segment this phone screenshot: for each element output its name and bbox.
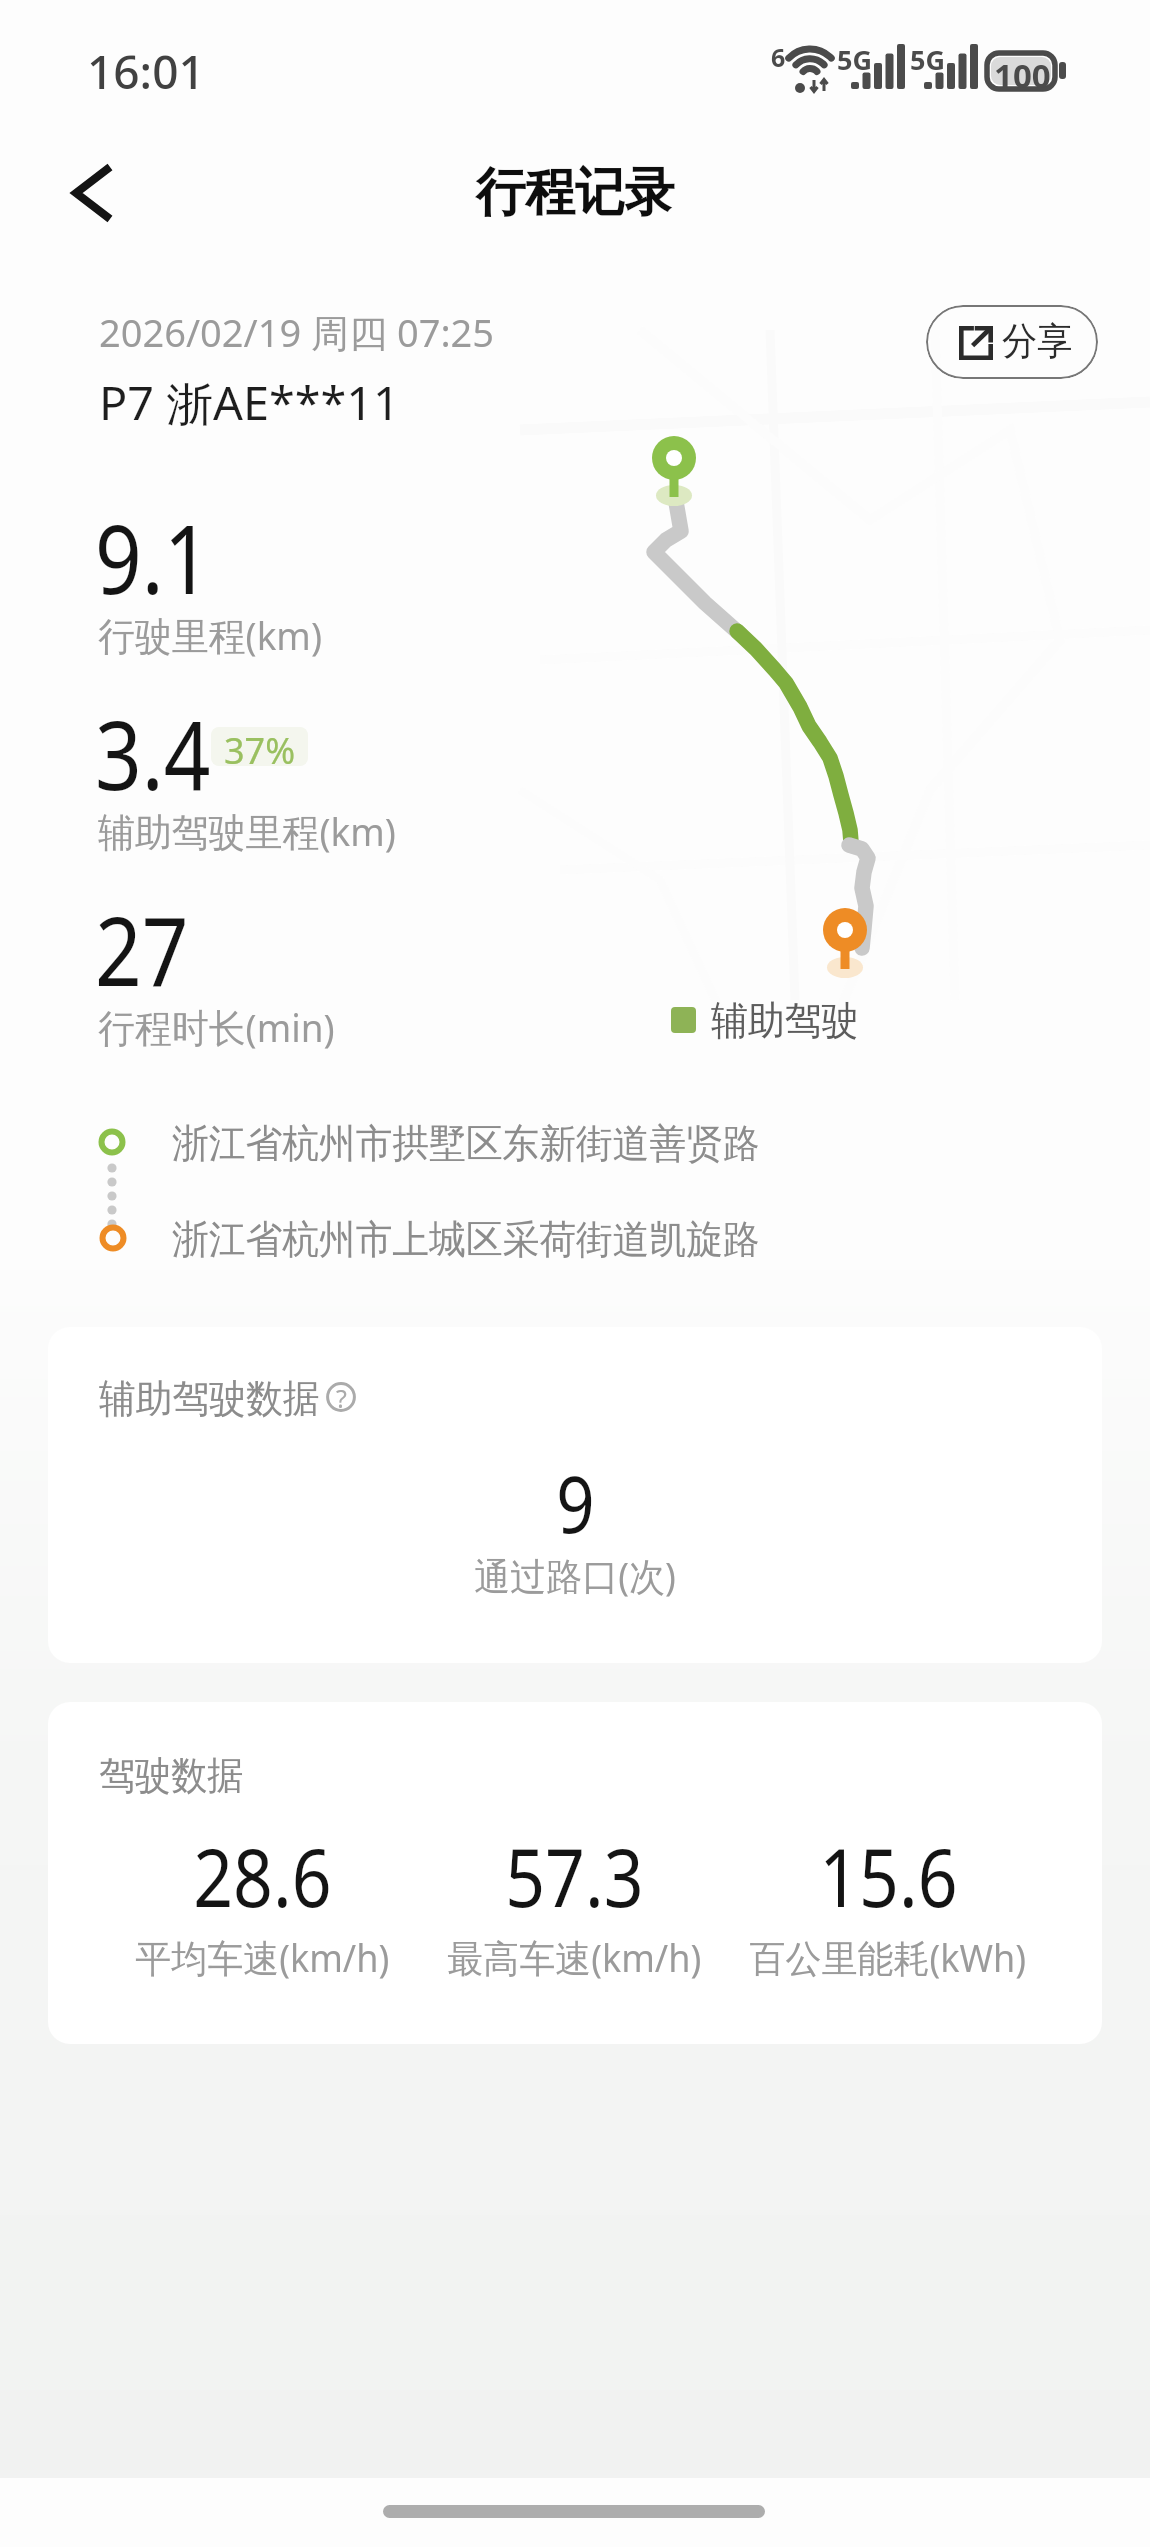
staticText: 分享 [1002,317,1072,364]
staticText: 57.3 [505,1820,644,1930]
staticText: 6 [771,40,786,74]
staticText: 辅助驾驶 [711,997,859,1047]
staticText: 9.1 [95,492,211,621]
staticText: 2026/02/19 周四 07:25 [99,306,495,358]
button[interactable]: Share [926,305,1098,379]
staticText: 行程时长(min) [98,1000,335,1053]
button[interactable]: 浙江省杭州市上城区采荷街道凯旋路 [88,1215,848,1261]
staticText: 3.4 [95,688,211,817]
staticText: 28.6 [193,1820,332,1930]
staticText: 驾驶数据 [99,1752,243,1801]
staticText: 9 [556,1450,595,1556]
staticText: 100 [994,53,1051,98]
staticText: 15.6 [819,1820,958,1930]
button[interactable]: Back [53,153,133,233]
staticText: 行驶里程(km) [98,608,322,661]
staticText: 辅助驾驶数据 [99,1375,320,1424]
staticText: 16:01 [87,40,205,103]
staticText: 通过路口(次) [474,1549,676,1601]
staticText: 最高车速(km/h) [447,1931,702,1983]
staticText: 百公里能耗(kWh) [749,1931,1027,1983]
staticText: 37% [224,727,296,765]
staticText: 5G [837,41,872,78]
staticText: 行程记录 [476,160,674,226]
staticText: 浙江省杭州市拱墅区东新街道善贤路 [172,1120,760,1164]
staticText: ? [336,1381,347,1411]
staticText: 5G [910,41,945,78]
staticText: 浙江省杭州市上城区采荷街道凯旋路 [172,1216,760,1260]
staticText: P7 浙AE***11 [99,372,401,433]
button[interactable]: 驾驶数据 [48,1702,1102,2044]
button[interactable]: 辅助驾驶数据 [48,1327,1102,1663]
staticText: 27 [95,884,189,1013]
staticText: 辅助驾驶里程(km) [98,804,396,857]
staticText: 平均车速(km/h) [135,1931,390,1983]
button[interactable]: 浙江省杭州市拱墅区东新街道善贤路 [88,1119,848,1165]
button[interactable]: Help [326,1382,356,1412]
